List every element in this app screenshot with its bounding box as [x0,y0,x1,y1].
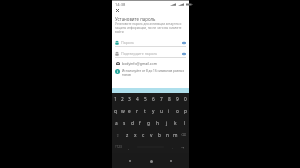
button[interactable]: 2 [119,93,126,105]
button[interactable]: v [147,129,155,141]
button[interactable]: d [128,117,136,129]
staticText: ?123 [115,145,122,149]
staticText: r [136,108,138,115]
staticText: z [126,132,129,139]
button[interactable]: r [133,105,141,117]
button[interactable]: Подтвердите пароль [115,50,186,58]
staticText: 8 [168,96,171,103]
staticText: Подтвердите пароль [121,51,158,56]
button[interactable]: 0 [181,93,189,105]
staticText: u [160,108,163,115]
staticText: 5 [144,96,147,103]
staticText: Используйте от 8 до 16 символов разных т… [122,69,184,77]
button[interactable]: Show password [182,41,186,45]
staticText: 4 [136,96,139,103]
button[interactable]: x [131,129,139,141]
staticText: 1 [114,96,117,103]
staticText: a [115,120,118,127]
button[interactable]: q [112,105,119,117]
staticText: l [184,120,186,127]
button[interactable]: m [171,129,179,141]
button[interactable]: p [181,105,189,117]
staticText: Установите пароль для активации аккаунта… [115,22,182,34]
staticText: j [166,120,168,127]
staticText: → [181,145,185,150]
button[interactable]: ?123 [112,141,124,153]
button[interactable]: f [136,117,144,129]
staticText: 0 [184,96,187,103]
staticText: ⇧ [116,133,120,138]
button[interactable]: 9 [173,93,181,105]
staticText: i [117,70,118,74]
staticText: . [172,145,174,150]
button[interactable]: k [171,117,180,129]
button[interactable]: 7 [157,93,165,105]
button[interactable]: Enter [177,141,189,153]
staticText: x [134,132,137,139]
button[interactable]: 5 [141,93,149,105]
staticText: c [142,132,145,139]
button[interactable]: 8 [165,93,173,105]
staticText: p [184,108,187,115]
staticText: , [128,145,130,150]
button[interactable]: 4 [133,93,141,105]
staticText: bodyinfo@gmail.com [122,61,157,66]
button[interactable]: Close [113,6,122,15]
button[interactable]: 6 [149,93,157,105]
button[interactable]: c [139,129,147,141]
staticText: ⌫ [181,133,187,137]
staticText: k [174,120,177,127]
staticText: n [166,132,169,139]
button[interactable]: i [165,105,173,117]
button[interactable]: Shift [112,129,123,141]
staticText: s [123,120,126,127]
button[interactable]: Show password [182,52,186,56]
staticText: o [176,108,179,115]
button[interactable]: z [123,129,131,141]
staticText: b [158,132,161,139]
staticText: e [128,108,131,115]
staticText: i [168,108,170,115]
button[interactable]: h [153,117,162,129]
button[interactable]: 1 [112,93,119,105]
staticText: 2 [121,96,124,103]
staticText: 7 [160,96,163,103]
staticText: q [114,108,117,115]
button[interactable]: a [112,117,120,129]
button[interactable]: Пароль [115,39,186,47]
button[interactable]: l [180,117,189,129]
button[interactable]: Backspace [179,129,189,141]
staticText: w [121,108,125,115]
button[interactable]: w [119,105,126,117]
button[interactable]: Back [127,158,133,164]
button[interactable]: n [163,129,171,141]
button[interactable]: s [120,117,128,129]
button[interactable]: o [173,105,181,117]
button[interactable]: 3 [126,93,133,105]
staticText: 6 [152,96,155,103]
staticText: y [152,108,155,115]
button[interactable]: t [141,105,149,117]
staticText: Пароль [121,40,135,45]
staticText: h [156,120,159,127]
button[interactable]: b [155,129,163,141]
button[interactable]: u [157,105,165,117]
staticText: t [144,108,146,115]
button[interactable]: g [144,117,153,129]
staticText: 14:38 [115,2,126,7]
staticText: Установите пароль [115,16,156,22]
button[interactable]: j [162,117,171,129]
button[interactable]: Home [148,158,154,164]
button[interactable]: Recents [168,158,174,164]
staticText: d [131,120,134,127]
staticText: 3 [128,96,131,103]
button[interactable]: e [126,105,133,117]
button[interactable]: y [149,105,157,117]
staticText: v [150,132,153,139]
staticText: m [173,132,178,139]
staticText: f [139,120,141,127]
staticText: 9 [176,96,179,103]
